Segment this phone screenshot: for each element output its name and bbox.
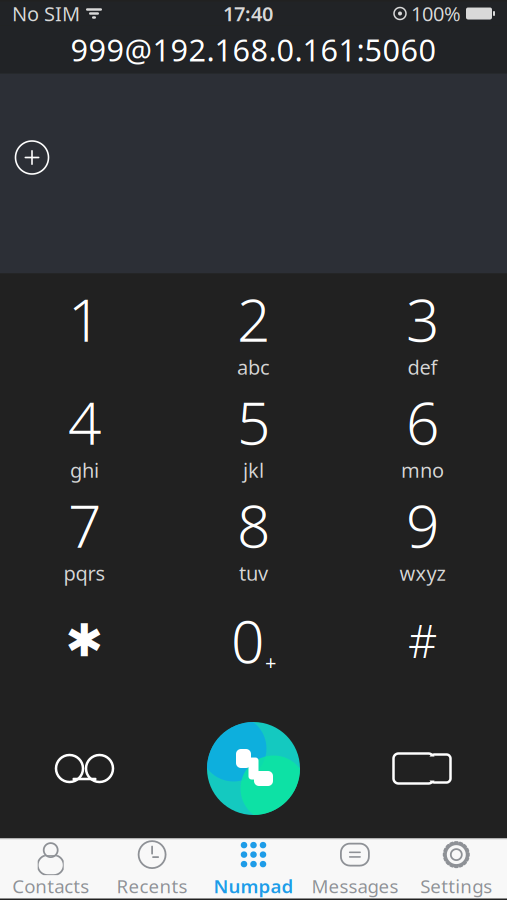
button[interactable]: Recents [101,839,203,898]
button[interactable]: Star [0,585,169,695]
staticText: 4 [68,383,101,461]
button[interactable]: 7 [0,482,169,585]
staticText: No SIM [12,0,80,27]
button[interactable]: Call [169,698,338,838]
button[interactable]: 6 [338,379,507,482]
button[interactable]: 4 [0,379,169,482]
staticText: Contacts [12,874,89,898]
staticText: abc [237,354,270,380]
button[interactable]: Voicemail [0,698,169,838]
button[interactable]: 9 [338,482,507,585]
staticText: ghi [70,457,99,483]
staticText: Numpad [213,874,293,898]
staticText: jkl [243,457,264,483]
button[interactable]: 8 [169,482,338,585]
staticText: 100% [411,0,461,27]
staticText: wxyz [399,560,445,586]
staticText: 999@192.168.0.161:5060 [70,29,436,70]
staticText: 3 [406,280,439,358]
button[interactable]: 5 [169,379,338,482]
button[interactable]: 3 [338,276,507,379]
button[interactable]: Video call [338,698,507,838]
button[interactable]: Settings [406,839,507,898]
staticText: ✱ [65,615,103,666]
staticText: 7 [68,486,101,564]
staticText: Messages [311,874,398,898]
staticText: 9 [406,486,439,564]
staticText: pqrs [63,560,105,586]
staticText: 5 [237,383,270,461]
staticText: def [407,354,437,380]
button[interactable]: Add contact [10,135,54,179]
button[interactable]: Zero plus [169,585,338,695]
staticText: # [408,610,437,671]
button[interactable]: 1 [0,276,169,379]
button[interactable]: Contacts [0,839,101,898]
staticText: 6 [406,383,439,461]
button[interactable]: Messages [304,839,406,898]
staticText: Recents [117,874,188,898]
staticText: + [265,649,276,675]
staticText: tuv [239,560,268,586]
staticText: 17:40 [223,0,273,27]
staticText: 2 [237,280,270,358]
staticText: Settings [420,874,492,898]
button[interactable]: Numpad [203,839,304,898]
staticText: mno [401,457,444,483]
staticText: 0 [231,601,264,679]
staticText: 1 [68,280,101,358]
button[interactable]: 2 [169,276,338,379]
staticText: 8 [237,486,270,564]
button[interactable]: Pound [338,585,507,695]
